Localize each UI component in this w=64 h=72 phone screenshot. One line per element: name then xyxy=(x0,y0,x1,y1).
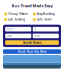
staticText: Safe Travel xyxy=(37,18,52,21)
staticText: Book Your Trip Now xyxy=(18,50,46,53)
staticText: From xyxy=(6,27,12,31)
staticText: Search Buses xyxy=(23,41,41,44)
staticText: Cheap Tickets xyxy=(8,12,27,16)
staticText: To xyxy=(34,27,37,31)
button[interactable]: Search Buses xyxy=(5,40,59,45)
staticText: Live Tracking xyxy=(8,18,25,21)
staticText: Easy Booking xyxy=(37,12,55,16)
button[interactable]: Book Your Trip Now xyxy=(3,49,61,54)
staticText: Seats xyxy=(34,34,40,38)
staticText: Bus Travel Made Easy xyxy=(11,3,52,8)
staticText: Date xyxy=(6,34,12,38)
